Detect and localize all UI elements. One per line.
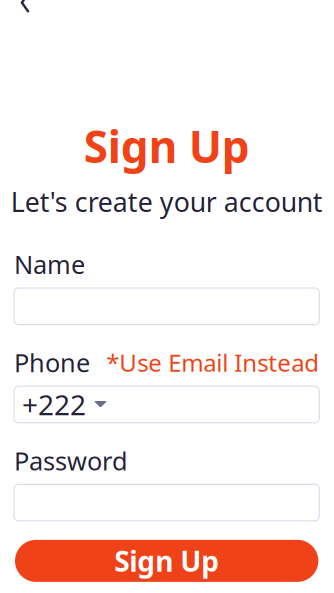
button[interactable]: Back [3,0,47,25]
staticText: *Use Email Instead [106,346,319,378]
staticText: Sign Up [114,542,219,579]
staticText: Password [14,444,128,477]
staticText: Let's create your account [11,184,323,219]
staticText: +222 [22,386,86,423]
staticText: Name [14,247,85,281]
staticText: Sign Up [84,117,250,175]
button[interactable]: Sign Up [15,540,318,582]
staticText: Phone [14,346,90,379]
button[interactable]: *Use Email Instead [106,346,319,378]
button[interactable]: +222 [14,386,319,423]
